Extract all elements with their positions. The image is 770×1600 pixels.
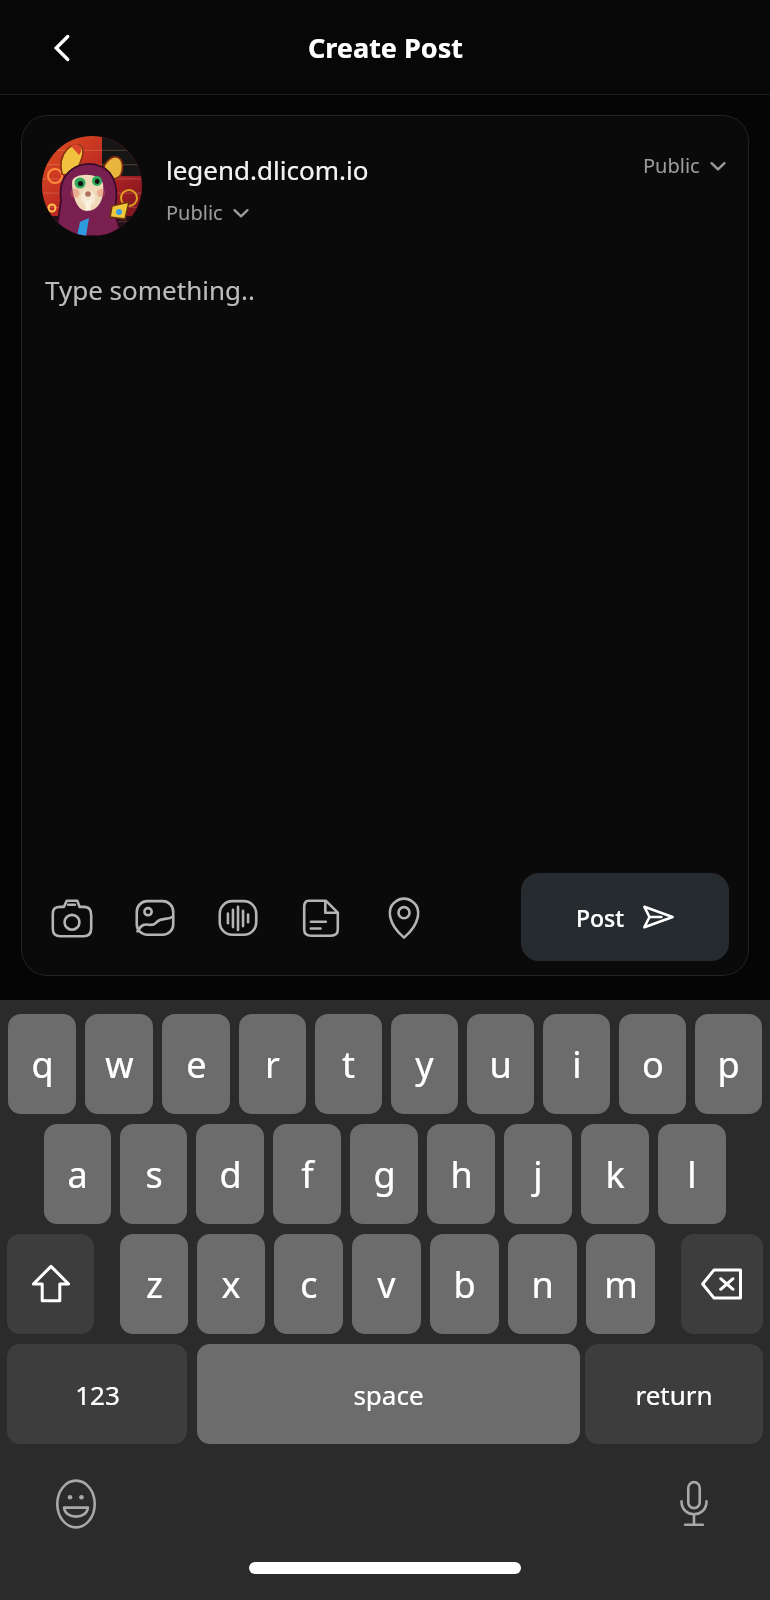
staticText: c [300, 1260, 318, 1309]
button[interactable]: t [315, 1014, 382, 1114]
button[interactable]: Public [166, 199, 250, 226]
button[interactable]: u [467, 1014, 534, 1114]
staticText: t [342, 1040, 355, 1089]
button[interactable]: Location [376, 889, 432, 945]
staticText: h [450, 1150, 473, 1199]
staticText: e [186, 1040, 207, 1089]
staticText: return [635, 1377, 713, 1412]
staticText: u [489, 1040, 512, 1089]
staticText: space [353, 1377, 424, 1412]
button[interactable]: l [658, 1124, 726, 1224]
button[interactable]: Back [26, 12, 98, 84]
button[interactable]: 123 [7, 1344, 187, 1444]
staticText: w [105, 1040, 134, 1089]
staticText: 123 [75, 1377, 120, 1412]
button[interactable]: e [162, 1014, 230, 1114]
staticText: d [219, 1150, 242, 1199]
staticText: Create Post [308, 29, 463, 66]
button[interactable]: c [274, 1234, 343, 1334]
button[interactable]: x [197, 1234, 265, 1334]
button[interactable]: Audio [210, 889, 266, 945]
staticText: o [642, 1040, 664, 1089]
staticText: n [531, 1260, 554, 1309]
staticText: b [453, 1260, 476, 1309]
button[interactable]: Emoji [44, 1472, 108, 1536]
staticText: l [687, 1150, 697, 1199]
button[interactable]: g [350, 1124, 418, 1224]
button[interactable]: j [504, 1124, 572, 1224]
staticText: a [67, 1150, 88, 1199]
button[interactable]: Post [521, 873, 729, 961]
staticText: Post [576, 902, 625, 933]
button[interactable]: Voice input [662, 1472, 726, 1536]
staticText: y [415, 1040, 434, 1089]
staticText: j [533, 1150, 543, 1199]
button[interactable]: p [695, 1014, 762, 1114]
staticText: i [572, 1040, 582, 1089]
staticText: r [265, 1040, 280, 1089]
staticText: k [605, 1150, 625, 1199]
button[interactable]: Profile picture [42, 136, 142, 236]
button[interactable]: r [239, 1014, 306, 1114]
button[interactable]: space [197, 1344, 580, 1444]
button[interactable]: q [8, 1014, 76, 1114]
staticText: f [301, 1150, 314, 1199]
staticText: q [31, 1040, 54, 1089]
button[interactable]: v [352, 1234, 421, 1334]
button[interactable]: m [586, 1234, 655, 1334]
button[interactable]: n [508, 1234, 577, 1334]
button[interactable]: k [581, 1124, 649, 1224]
button[interactable]: f [273, 1124, 341, 1224]
staticText: z [146, 1260, 163, 1309]
staticText: s [145, 1150, 163, 1199]
button[interactable]: Backspace [681, 1234, 763, 1334]
button[interactable]: z [120, 1234, 188, 1334]
button[interactable]: Photo [127, 889, 183, 945]
button[interactable]: h [427, 1124, 495, 1224]
staticText: p [717, 1040, 740, 1089]
button[interactable]: w [85, 1014, 153, 1114]
staticText: legend.dlicom.io [166, 152, 369, 187]
button[interactable]: Type something.. [21, 272, 749, 858]
button[interactable]: Camera [44, 889, 100, 945]
staticText: x [221, 1260, 241, 1309]
button[interactable]: Shift [7, 1234, 94, 1334]
button[interactable]: i [543, 1014, 610, 1114]
staticText: Public [166, 199, 223, 226]
staticText: m [604, 1260, 638, 1309]
button[interactable]: o [619, 1014, 686, 1114]
button[interactable]: Public [643, 152, 727, 179]
button[interactable]: s [120, 1124, 187, 1224]
staticText: Public [643, 152, 700, 179]
button[interactable]: b [430, 1234, 499, 1334]
staticText: g [373, 1150, 396, 1199]
staticText: v [377, 1260, 396, 1309]
button[interactable]: a [44, 1124, 111, 1224]
staticText: Type something.. [45, 272, 255, 307]
button[interactable]: d [196, 1124, 264, 1224]
button[interactable]: Document [293, 889, 349, 945]
button[interactable]: y [391, 1014, 458, 1114]
button[interactable]: return [585, 1344, 763, 1444]
